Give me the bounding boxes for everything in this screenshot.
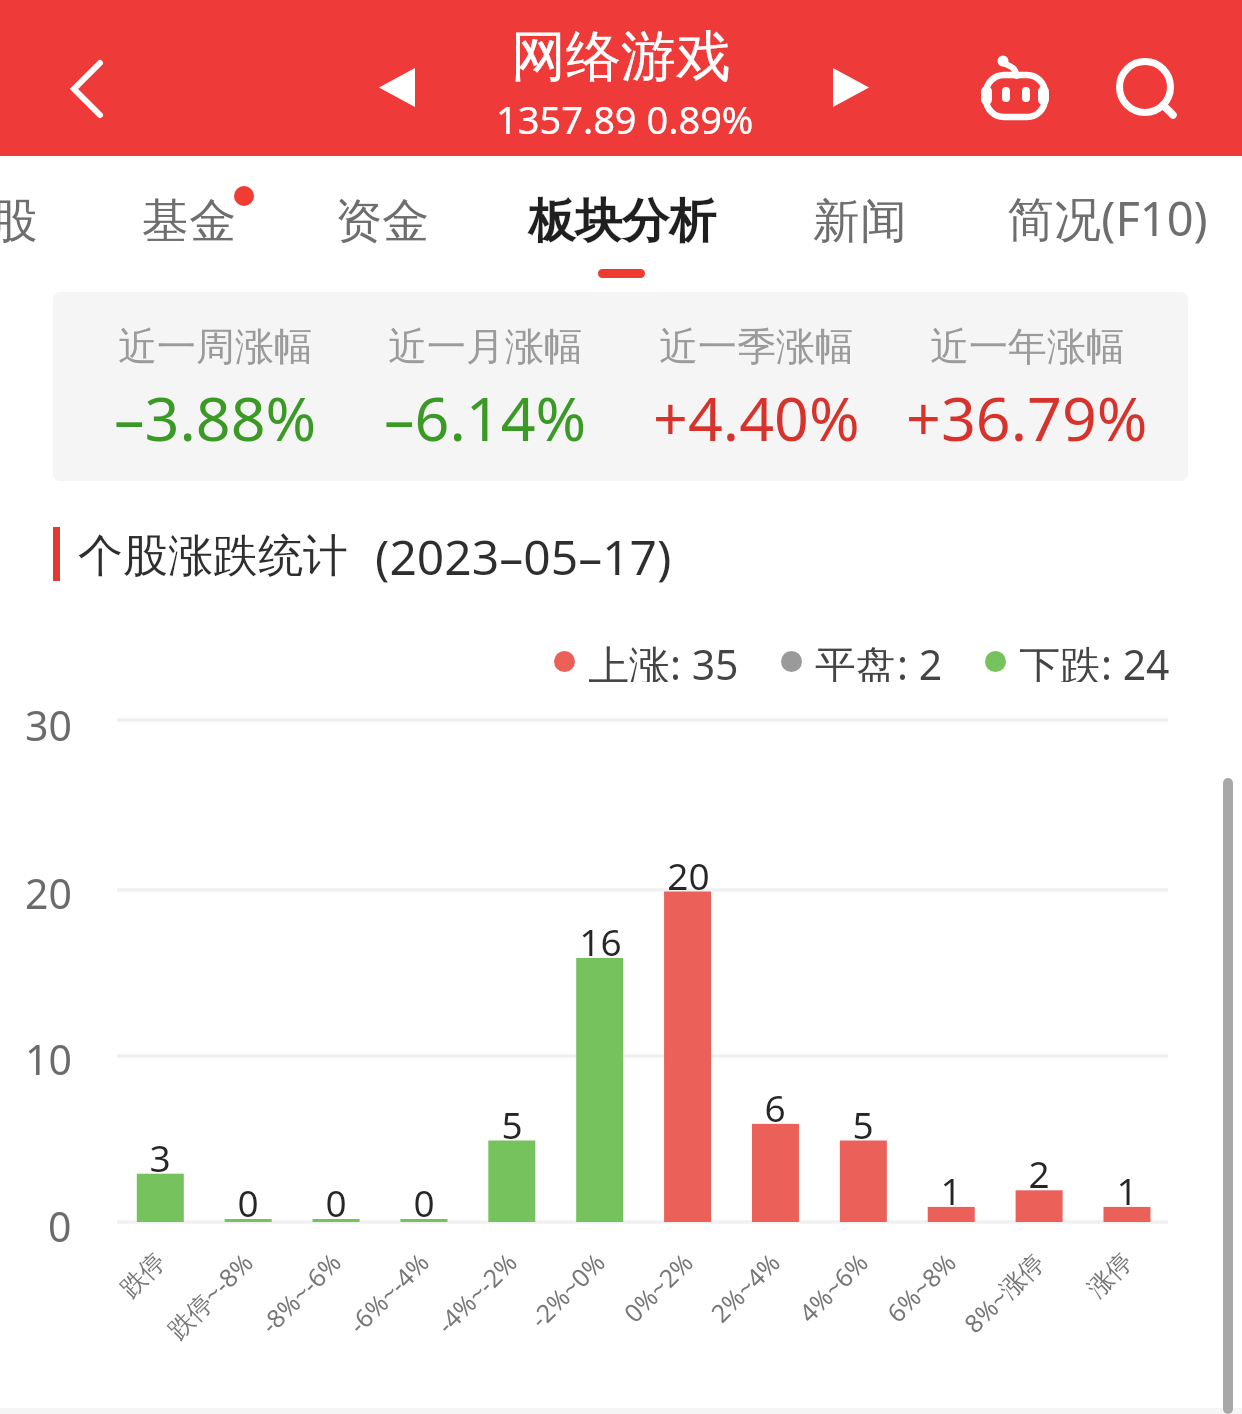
button[interactable]: 基金 xyxy=(59,156,319,290)
staticText: (2023–05–17) xyxy=(375,524,672,589)
staticText: 2 xyxy=(1028,1148,1050,1196)
staticText: 近一月涨幅 xyxy=(388,322,583,371)
staticText: 简况(F10) xyxy=(1007,186,1208,250)
staticText: 20 xyxy=(667,850,710,898)
staticText: 1 xyxy=(1116,1165,1138,1213)
button[interactable]: 近一季涨幅 xyxy=(606,292,906,481)
staticText: -8%~-6% xyxy=(253,1245,348,1340)
staticText: 网络游戏 xyxy=(511,22,731,91)
staticText: 平盘: 2 xyxy=(815,636,943,682)
staticText: –3.88% xyxy=(114,376,317,459)
staticText: 6 xyxy=(764,1082,786,1130)
staticText: 8%~涨停 xyxy=(956,1245,1051,1340)
staticText: 2%~4% xyxy=(703,1245,787,1329)
staticText: 上涨: 35 xyxy=(588,636,739,682)
button[interactable]: 上涨: 35 xyxy=(554,636,754,682)
button[interactable]: 股 xyxy=(0,156,144,290)
staticText: –6.14% xyxy=(384,376,587,459)
staticText: +4.40% xyxy=(653,376,860,459)
staticText: 下跌: 24 xyxy=(1019,636,1170,682)
staticText: 0%~2% xyxy=(616,1245,700,1329)
staticText: +36.79% xyxy=(906,376,1148,459)
staticText: 0 xyxy=(413,1177,435,1225)
staticText: 1357.89 0.89% xyxy=(496,93,754,145)
staticText: 跌停~-8% xyxy=(160,1245,260,1345)
staticText: 跌停 xyxy=(114,1246,171,1304)
staticText: 10 xyxy=(25,1031,72,1081)
staticText: 30 xyxy=(25,697,72,747)
staticText: -2%~0% xyxy=(522,1245,612,1335)
staticText: -4%~-2% xyxy=(429,1245,524,1340)
staticText: 0 xyxy=(325,1177,347,1225)
staticText: 近一年涨幅 xyxy=(930,322,1125,371)
button[interactable]: 近一年涨幅 xyxy=(877,292,1177,481)
staticText: -6%~-4% xyxy=(341,1245,436,1340)
staticText: 5 xyxy=(501,1099,523,1147)
button[interactable]: 近一月涨幅 xyxy=(335,292,635,481)
staticText: 股 xyxy=(0,192,38,251)
staticText: 0 xyxy=(237,1177,259,1225)
button[interactable]: AI assistant xyxy=(978,52,1058,132)
staticText: 0 xyxy=(48,1198,72,1248)
staticText: 新闻 xyxy=(813,192,907,251)
button[interactable]: Back xyxy=(33,48,113,128)
staticText: 20 xyxy=(25,865,72,915)
button[interactable]: 下跌: 24 xyxy=(985,636,1185,682)
button[interactable]: 近一周涨幅 xyxy=(65,292,365,481)
staticText: 近一周涨幅 xyxy=(118,322,313,371)
staticText: 16 xyxy=(579,916,622,964)
button[interactable]: Search xyxy=(1105,47,1185,127)
staticText: 基金 xyxy=(142,192,236,251)
button[interactable]: Previous sector xyxy=(367,58,427,118)
staticText: 3 xyxy=(149,1132,171,1180)
button[interactable]: Next sector xyxy=(821,58,881,118)
button[interactable]: 板块分析 xyxy=(492,156,752,290)
staticText: 涨停 xyxy=(1081,1246,1138,1304)
button[interactable]: 新闻 xyxy=(730,156,990,290)
staticText: 1 xyxy=(940,1165,962,1213)
button[interactable]: 平盘: 2 xyxy=(781,636,981,682)
button[interactable]: 简况(F10) xyxy=(977,156,1237,290)
staticText: 6%~8% xyxy=(879,1245,963,1329)
staticText: 近一季涨幅 xyxy=(659,322,854,371)
staticText: 5 xyxy=(852,1099,874,1147)
staticText: 资金 xyxy=(335,192,429,251)
staticText: 个股涨跌统计 xyxy=(78,528,348,585)
staticText: 4%~6% xyxy=(791,1245,875,1329)
button[interactable]: 资金 xyxy=(252,156,512,290)
staticText: 板块分析 xyxy=(528,192,716,251)
